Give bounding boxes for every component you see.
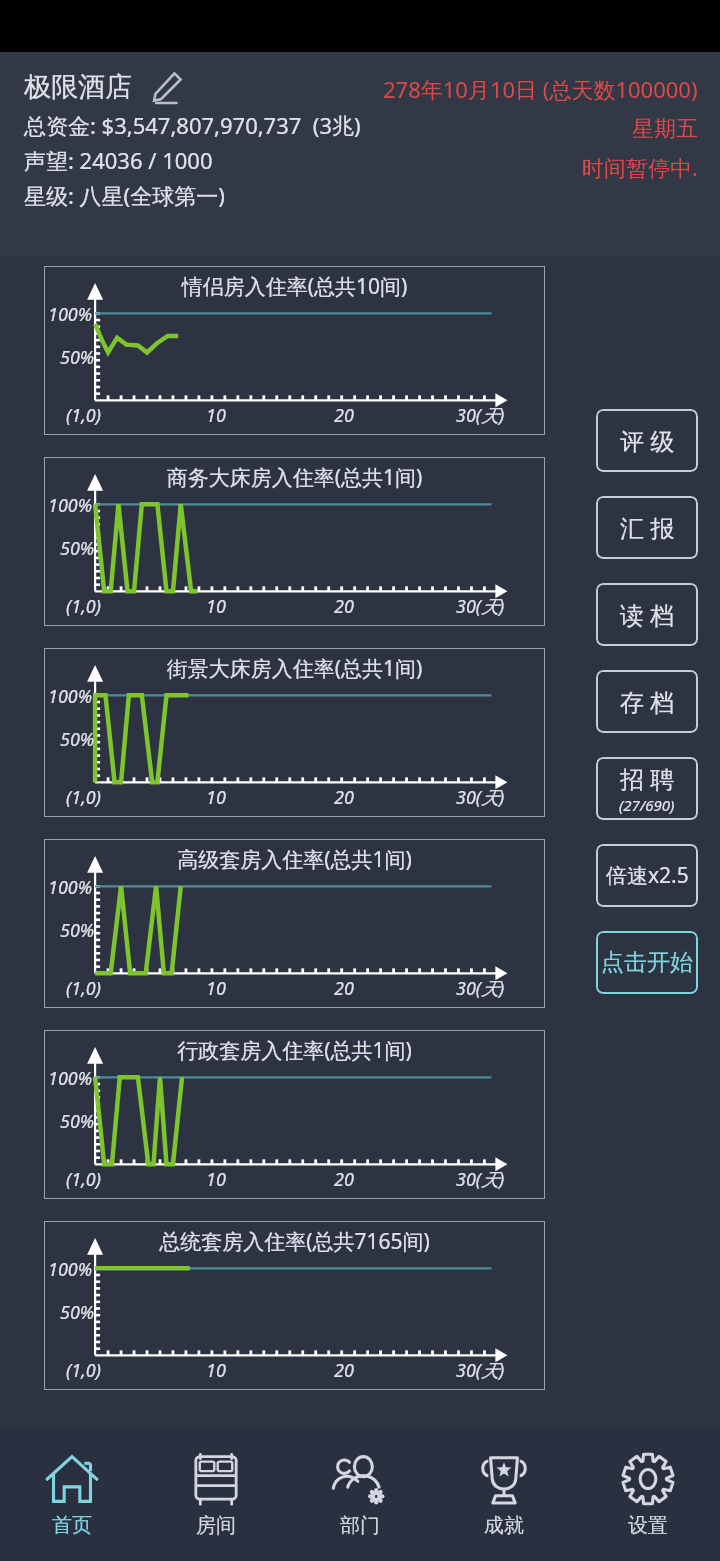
staticText: (1,0) — [66, 594, 101, 619]
staticText: 100% — [48, 493, 93, 518]
staticText: 极限酒店 — [24, 70, 132, 104]
staticText: 评 级 — [620, 424, 675, 457]
staticText: 高级套房入住率(总共1间) — [44, 845, 545, 874]
staticText: (27/690) — [619, 795, 675, 815]
staticText: 首页 — [52, 1513, 92, 1538]
staticText: 星级: 八星(全球第一) — [24, 180, 225, 210]
button[interactable]: 设置 — [576, 1428, 720, 1561]
staticText: 20 — [334, 1167, 354, 1192]
staticText: 20 — [334, 1358, 354, 1383]
button[interactable]: 总统套房入住率(总共7165间) — [44, 1221, 545, 1390]
button[interactable]: 首页 — [0, 1428, 144, 1561]
staticText: 10 — [206, 594, 226, 619]
staticText: 50% — [60, 1300, 95, 1325]
staticText: 商务大床房入住率(总共1间) — [44, 463, 545, 492]
staticText: 50% — [60, 918, 95, 943]
button[interactable]: 部门 — [288, 1428, 432, 1561]
staticText: 读 档 — [620, 598, 675, 631]
button[interactable]: 存 档 — [596, 670, 698, 733]
staticText: 50% — [60, 727, 95, 752]
button[interactable]: Edit hotel name — [146, 66, 188, 108]
staticText: 50% — [60, 1109, 95, 1134]
staticText: 20 — [334, 785, 354, 810]
staticText: 部门 — [340, 1513, 380, 1538]
staticText: 街景大床房入住率(总共1间) — [44, 654, 545, 683]
staticText: 100% — [48, 1066, 93, 1091]
staticText: (1,0) — [66, 785, 101, 810]
staticText: 情侣房入住率(总共10间) — [44, 272, 545, 301]
staticText: 100% — [48, 684, 93, 709]
button[interactable]: 成就 — [432, 1428, 576, 1561]
staticText: 存 档 — [620, 685, 675, 718]
button[interactable]: 评 级 — [596, 409, 698, 472]
button[interactable]: 街景大床房入住率(总共1间) — [44, 648, 545, 817]
button[interactable]: 情侣房入住率(总共10间) — [44, 266, 545, 435]
staticText: 50% — [60, 536, 95, 561]
staticText: 20 — [334, 976, 354, 1001]
staticText: 10 — [206, 403, 226, 428]
staticText: 30(天) — [456, 785, 505, 810]
staticText: 倍速x2.5 — [606, 861, 689, 890]
staticText: 20 — [334, 594, 354, 619]
staticText: 成就 — [484, 1513, 524, 1538]
staticText: 总资金: $3,547,807,970,737 (3兆) — [24, 110, 361, 140]
staticText: 汇 报 — [620, 511, 675, 544]
staticText: 50% — [60, 345, 95, 370]
staticText: 100% — [48, 1257, 93, 1282]
staticText: 10 — [206, 976, 226, 1001]
staticText: 30(天) — [456, 1167, 505, 1192]
button[interactable]: 读 档 — [596, 583, 698, 646]
staticText: 点击开始 — [601, 948, 693, 977]
staticText: 声望: 24036 / 1000 — [24, 145, 213, 175]
staticText: 招 聘 — [620, 762, 675, 795]
staticText: 10 — [206, 785, 226, 810]
staticText: 房间 — [196, 1513, 236, 1538]
button[interactable]: 商务大床房入住率(总共1间) — [44, 457, 545, 626]
staticText: 10 — [206, 1358, 226, 1383]
staticText: 30(天) — [456, 403, 505, 428]
staticText: 278年10月10日 (总天数100000) — [383, 74, 698, 104]
staticText: 100% — [48, 875, 93, 900]
button[interactable]: 点击开始 — [596, 931, 698, 994]
staticText: 时间暂停中. — [582, 152, 698, 182]
staticText: 星期五 — [632, 115, 698, 143]
staticText: (1,0) — [66, 403, 101, 428]
staticText: 总统套房入住率(总共7165间) — [44, 1227, 545, 1256]
button[interactable]: 行政套房入住率(总共1间) — [44, 1030, 545, 1199]
staticText: 设置 — [628, 1513, 668, 1538]
staticText: (1,0) — [66, 1167, 101, 1192]
staticText: 100% — [48, 302, 93, 327]
button[interactable]: 汇 报 — [596, 496, 698, 559]
button[interactable]: 高级套房入住率(总共1间) — [44, 839, 545, 1008]
staticText: (1,0) — [66, 976, 101, 1001]
staticText: 10 — [206, 1167, 226, 1192]
staticText: 30(天) — [456, 1358, 505, 1383]
staticText: 30(天) — [456, 976, 505, 1001]
button[interactable]: 房间 — [144, 1428, 288, 1561]
button[interactable]: 倍速x2.5 — [596, 844, 698, 907]
staticText: 行政套房入住率(总共1间) — [44, 1036, 545, 1065]
staticText: (1,0) — [66, 1358, 101, 1383]
staticText: 20 — [334, 403, 354, 428]
button[interactable]: 招 聘 — [596, 757, 698, 820]
staticText: 30(天) — [456, 594, 505, 619]
